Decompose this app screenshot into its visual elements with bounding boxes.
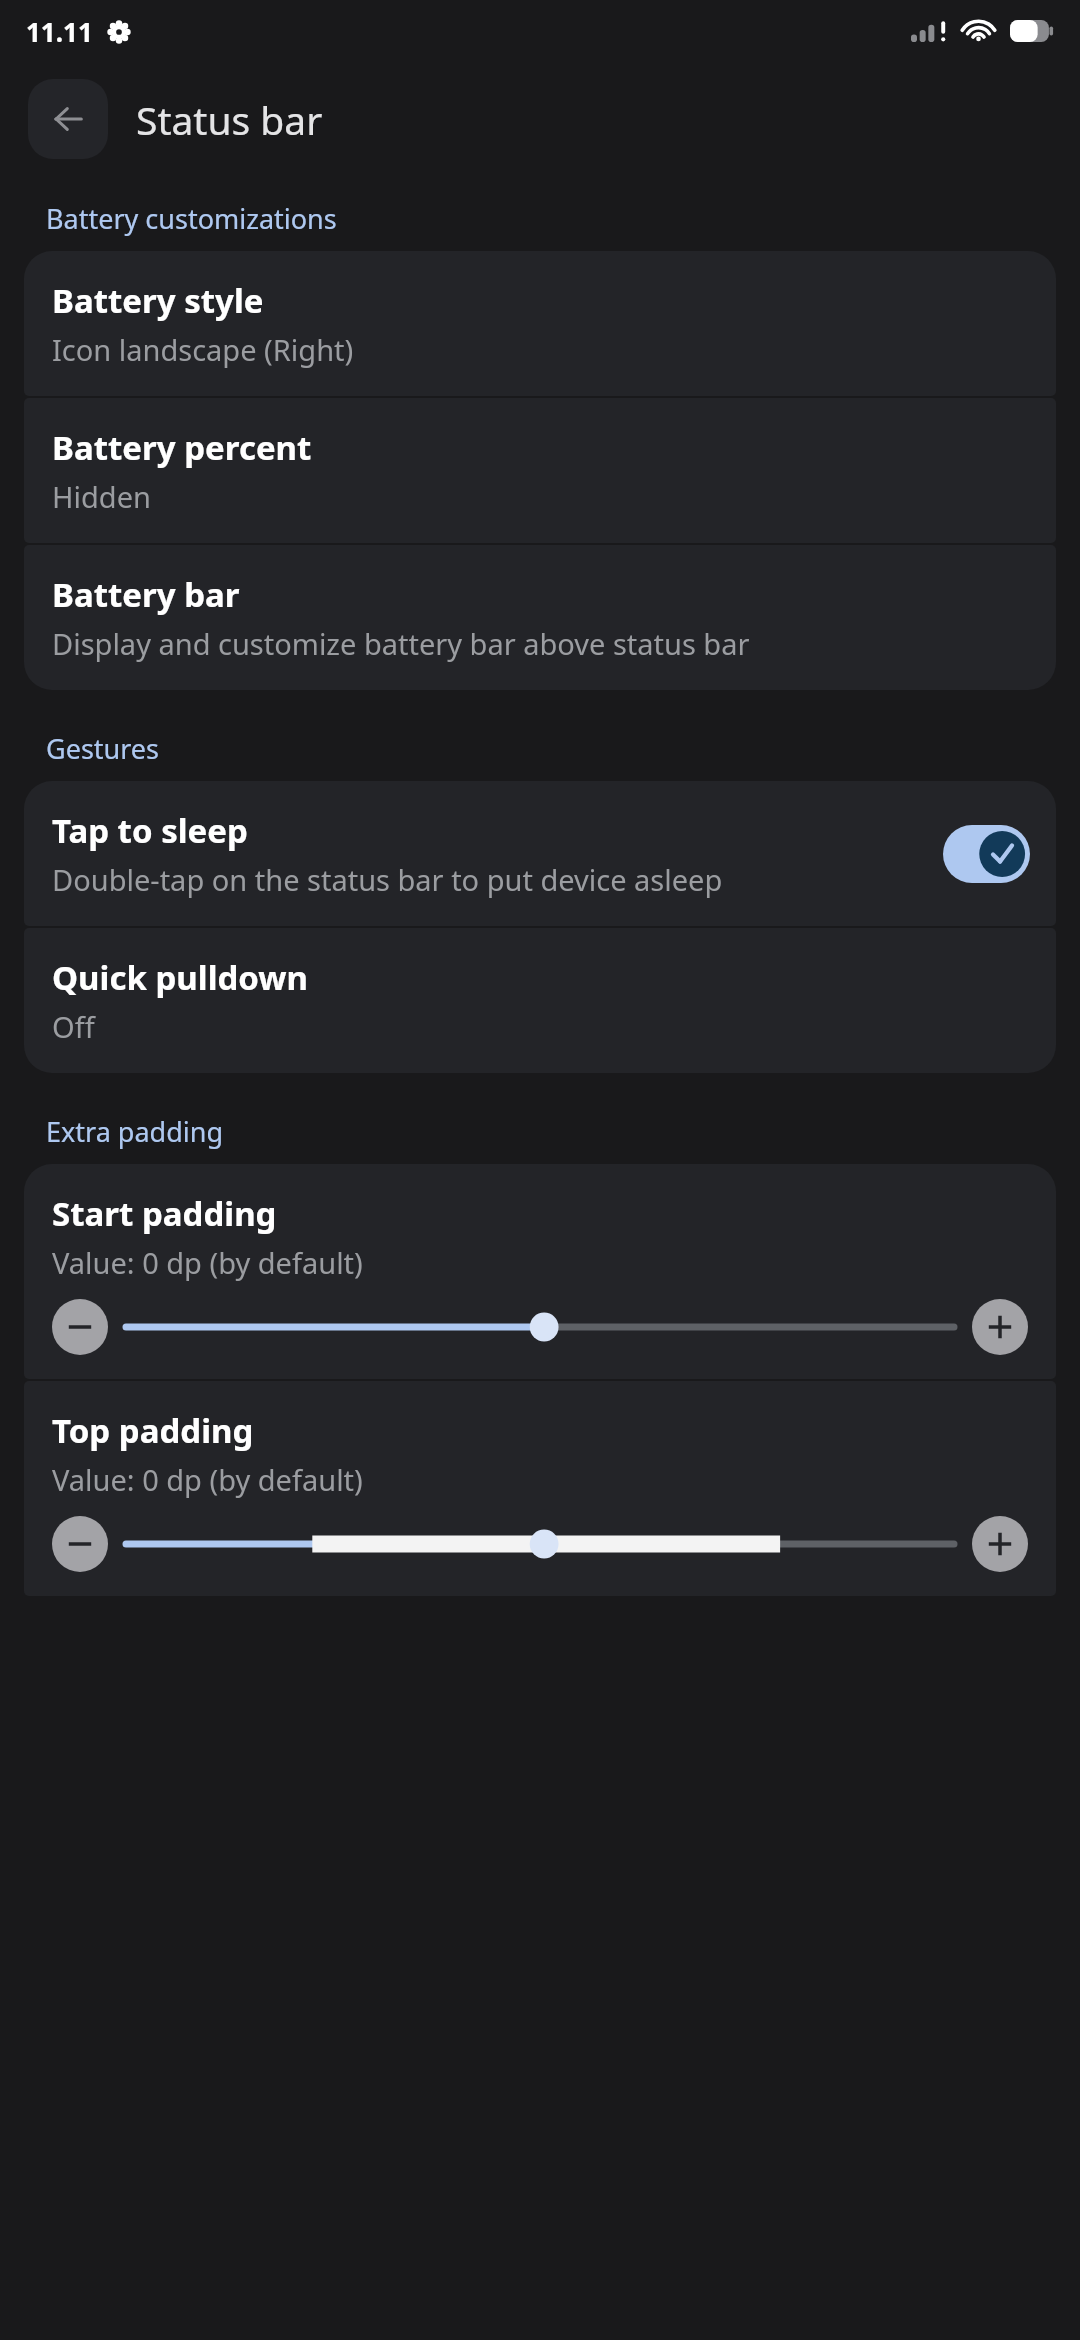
staticText: Tap to sleep [52,808,248,853]
staticText: Battery bar [52,572,240,617]
staticText: Value: 0 dp (by default) [52,1460,363,1499]
button[interactable]: Decrease Top padding [52,1516,108,1572]
staticText: Gestures [46,730,160,767]
button[interactable]: Increase Top padding [972,1516,1028,1572]
staticText: Battery percent [52,425,312,470]
staticText: Start padding [52,1191,277,1236]
button[interactable]: Tap to sleep [24,781,1056,926]
staticText: Double-tap on the status bar to put devi… [52,860,818,899]
button[interactable]: Tap to sleep toggle [943,825,1030,883]
staticText: Status bar [136,93,323,146]
staticText: Hidden [52,477,151,516]
button[interactable]: Battery percent [24,398,1056,543]
staticText: 11.11 [26,14,93,49]
button[interactable]: Start padding slider [126,1297,954,1357]
staticText: Battery customizations [46,200,337,237]
staticText: Value: 0 dp (by default) [52,1243,363,1282]
button[interactable]: Top padding [24,1381,1056,1596]
button[interactable]: Back [28,79,108,159]
button[interactable]: Increase Start padding [972,1299,1028,1355]
staticText: Off [52,1007,95,1046]
staticText: Quick pulldown [52,955,308,1000]
button[interactable]: Battery style [24,251,1056,396]
button[interactable]: Top padding slider [126,1514,954,1574]
button[interactable]: Quick pulldown [24,928,1056,1073]
staticText: Display and customize battery bar above … [52,624,833,663]
button[interactable]: Start padding [24,1164,1056,1379]
staticText: Icon landscape (Right) [52,330,354,369]
staticText: Battery style [52,278,264,323]
button[interactable]: Battery bar [24,545,1056,690]
staticText: Extra padding [46,1113,224,1150]
staticText: Top padding [52,1408,254,1453]
button[interactable]: Decrease Start padding [52,1299,108,1355]
